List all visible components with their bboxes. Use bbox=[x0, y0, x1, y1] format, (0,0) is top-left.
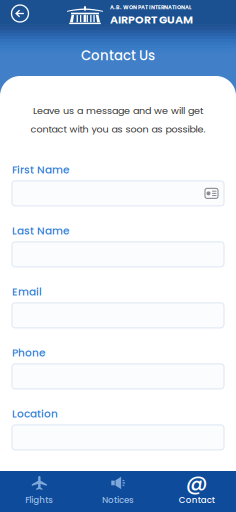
staticText: Phone bbox=[12, 345, 46, 360]
button[interactable]: Notices bbox=[79, 471, 157, 512]
staticText: Leave us a message and we will get bbox=[33, 104, 203, 117]
staticText: Flights bbox=[25, 494, 53, 506]
staticText: Last Name bbox=[12, 223, 70, 238]
staticText: @ bbox=[186, 468, 208, 498]
staticText: Contact bbox=[179, 494, 215, 506]
button[interactable]: Flights bbox=[0, 471, 79, 512]
staticText: Email bbox=[12, 284, 42, 299]
button[interactable]: @ bbox=[157, 471, 236, 512]
staticText: Location bbox=[12, 406, 58, 421]
staticText: Notices bbox=[102, 494, 134, 506]
staticText: A.B. WON PAT INTERNATIONAL bbox=[110, 4, 192, 11]
staticText: AIRPORT GUAM bbox=[110, 12, 193, 27]
button[interactable]: Back bbox=[6, 0, 34, 27]
staticText: Contact Us bbox=[81, 46, 155, 65]
staticText: First Name bbox=[12, 162, 70, 177]
staticText: contact with you as soon as possible. bbox=[30, 122, 205, 136]
